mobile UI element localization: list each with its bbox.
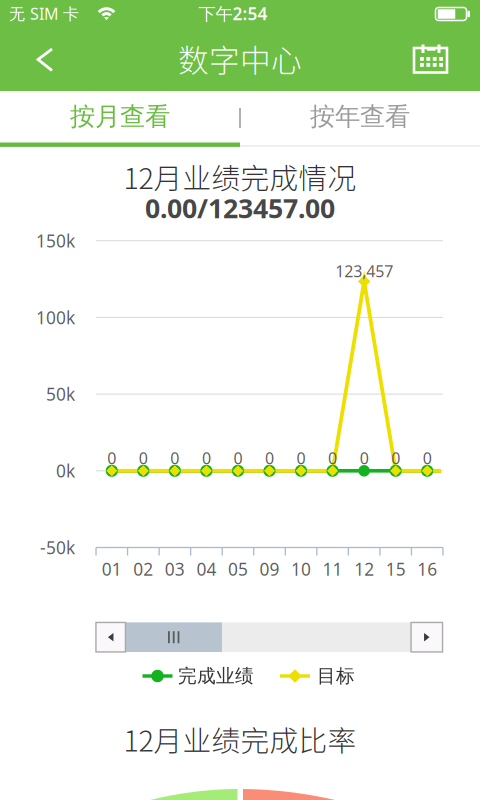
staticText: 50k bbox=[46, 383, 75, 406]
button[interactable]: Calendar bbox=[408, 39, 452, 79]
staticText: 16 bbox=[417, 557, 437, 580]
staticText: 0 bbox=[360, 447, 369, 469]
button[interactable]: Back bbox=[20, 38, 64, 82]
staticText: 150k bbox=[36, 229, 75, 252]
staticText: 0 bbox=[202, 447, 211, 469]
staticText: 11 bbox=[323, 557, 343, 580]
staticText: 数字中心 bbox=[178, 36, 302, 81]
staticText: 01 bbox=[102, 557, 122, 580]
staticText: 按月查看 bbox=[70, 101, 170, 132]
staticText: 0 bbox=[170, 447, 179, 469]
button[interactable]: Scroll left bbox=[96, 622, 125, 652]
staticText: 0k bbox=[56, 459, 75, 482]
staticText: 10 bbox=[291, 557, 311, 580]
button[interactable]: Scroll right bbox=[411, 622, 443, 652]
staticText: 无 SIM 卡 bbox=[9, 3, 79, 24]
staticText: 123,457 bbox=[335, 260, 393, 282]
button[interactable]: Zoom slider bbox=[125, 622, 222, 652]
staticText: 12月业绩完成情况 bbox=[123, 156, 356, 197]
staticText: 0 bbox=[423, 447, 432, 469]
staticText: 12 bbox=[354, 557, 374, 580]
staticText: 0 bbox=[139, 447, 148, 469]
staticText: 09 bbox=[259, 557, 279, 580]
staticText: 完成业绩 bbox=[178, 664, 254, 687]
button[interactable]: 按年查看 bbox=[240, 91, 480, 142]
staticText: 0 bbox=[265, 447, 274, 469]
staticText: -50k bbox=[40, 536, 75, 559]
staticText: 04 bbox=[196, 557, 216, 580]
staticText: 0.00/123457.00 bbox=[145, 190, 335, 226]
staticText: 0 bbox=[296, 447, 305, 469]
staticText: 15 bbox=[386, 557, 406, 580]
button[interactable]: 按月查看 bbox=[0, 91, 240, 142]
staticText: 0 bbox=[233, 447, 242, 469]
staticText: 按年查看 bbox=[310, 101, 410, 132]
staticText: 02 bbox=[133, 557, 153, 580]
staticText: 0 bbox=[328, 447, 337, 469]
staticText: 目标 bbox=[317, 664, 355, 687]
staticText: 100k bbox=[36, 306, 75, 329]
staticText: 0 bbox=[107, 447, 116, 469]
staticText: 03 bbox=[165, 557, 185, 580]
staticText: 0 bbox=[391, 447, 400, 469]
staticText: 05 bbox=[228, 557, 248, 580]
staticText: 下午2:54 bbox=[198, 2, 267, 25]
staticText: 12月业绩完成比率 bbox=[123, 718, 356, 760]
